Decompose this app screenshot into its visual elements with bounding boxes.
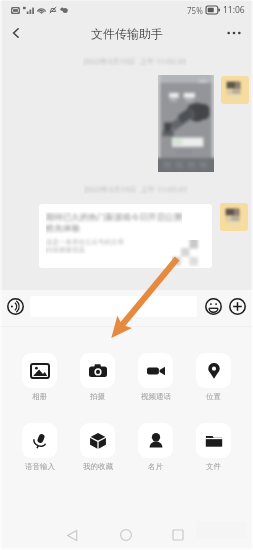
staticText: 名片 xyxy=(148,462,163,471)
button[interactable]: Avatar xyxy=(220,203,248,231)
button[interactable]: 我的收藏 xyxy=(69,423,126,471)
button[interactable]: More options xyxy=(220,19,248,47)
staticText: 这是一条来自公众号的文章 xyxy=(46,238,124,246)
button[interactable]: Voice message xyxy=(4,295,26,317)
staticText: 内容摘要信息 xyxy=(46,246,85,254)
staticText: 75% xyxy=(187,5,203,16)
staticText: 期待已久的热门新游戏今日开启公测 xyxy=(46,212,182,223)
button[interactable]: More functions xyxy=(226,295,248,317)
button[interactable]: Avatar xyxy=(221,76,249,104)
button[interactable]: Back xyxy=(2,19,30,47)
staticText: 相册 xyxy=(32,392,47,401)
staticText: 11:06 xyxy=(223,4,245,16)
staticText: 位置 xyxy=(206,392,221,401)
button[interactable]: Recents xyxy=(163,520,193,550)
staticText: 文件传输助手 xyxy=(91,26,163,41)
staticText: 拍摄 xyxy=(90,392,105,401)
staticText: 文件 xyxy=(206,462,221,471)
staticText: 抢先体验 xyxy=(46,223,80,234)
button[interactable]: 文件 xyxy=(185,423,242,471)
button[interactable]: 拍摄 xyxy=(69,353,126,401)
button[interactable]: 语音输入 xyxy=(11,423,68,471)
staticText: 我的收藏 xyxy=(83,462,113,471)
button[interactable]: 相册 xyxy=(11,353,68,401)
button[interactable]: 位置 xyxy=(185,353,242,401)
staticText: 语音输入 xyxy=(25,462,55,471)
button[interactable]: Home xyxy=(111,520,141,550)
staticText: 2022年3月15日 上午 11:02:33 xyxy=(83,56,187,66)
button[interactable]: Back xyxy=(57,520,87,550)
staticText: 视频通话 xyxy=(141,392,171,401)
button[interactable]: 名片 xyxy=(127,423,184,471)
button[interactable]: Message input xyxy=(30,296,197,317)
button[interactable]: Emoji xyxy=(202,295,224,317)
staticText: 2022年3月15日 上午 11:05:47 xyxy=(84,184,188,194)
button[interactable]: 期待已久的热门新游戏今日开启公测 xyxy=(39,204,212,268)
button[interactable]: 视频通话 xyxy=(127,353,184,401)
